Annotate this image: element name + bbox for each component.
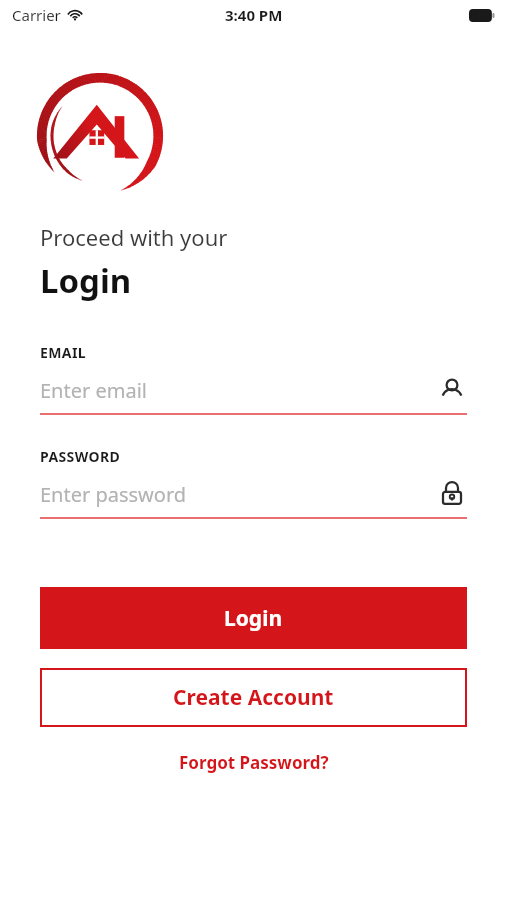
staticText: EMAIL: [40, 343, 87, 362]
staticText: 3:40 PM: [225, 5, 283, 25]
staticText: Login: [224, 604, 283, 633]
button[interactable]: Login: [40, 587, 467, 649]
button[interactable]: EMAIL: [40, 343, 467, 415]
other: Email: [437, 375, 467, 405]
staticText: Create Account: [173, 683, 334, 712]
staticText: Enter email: [40, 377, 437, 404]
button[interactable]: PASSWORD: [40, 447, 467, 519]
staticText: Carrier: [12, 5, 61, 25]
staticText: PASSWORD: [40, 447, 121, 466]
button[interactable]: Create Account: [40, 668, 467, 727]
staticText: Proceed with your: [40, 222, 228, 252]
other: Password: [437, 479, 467, 509]
staticText: Forgot Password?: [179, 751, 329, 774]
button[interactable]: Forgot Password?: [167, 745, 341, 780]
staticText: Login: [40, 258, 132, 303]
staticText: Enter password: [40, 481, 437, 508]
